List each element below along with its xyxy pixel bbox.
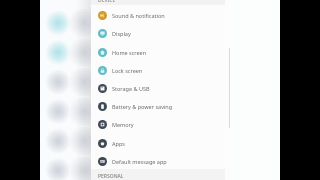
button[interactable]: Storage & USB xyxy=(91,79,231,97)
staticText: DEVICE xyxy=(98,0,116,4)
staticText: Lock screen xyxy=(112,67,143,74)
button[interactable]: Display xyxy=(91,24,231,42)
staticText: PERSONAL xyxy=(98,173,124,180)
button[interactable]: Battery & power saving xyxy=(91,97,231,115)
button[interactable]: Default message app xyxy=(91,152,231,170)
staticText: Display xyxy=(112,30,131,37)
button[interactable]: Memory xyxy=(91,115,231,133)
button[interactable]: Apps xyxy=(91,134,231,152)
button[interactable]: Lock screen xyxy=(91,61,231,79)
button[interactable]: Home screen xyxy=(91,43,231,61)
staticText: Home screen xyxy=(112,49,147,56)
staticText: Apps xyxy=(112,140,125,147)
staticText: Sound & notification xyxy=(112,12,165,19)
staticText: Battery & power saving xyxy=(112,103,173,110)
staticText: Memory xyxy=(112,121,134,128)
staticText: Default message app xyxy=(112,158,167,165)
button[interactable]: Sound & notification xyxy=(91,6,231,24)
staticText: Storage & USB xyxy=(112,85,150,92)
